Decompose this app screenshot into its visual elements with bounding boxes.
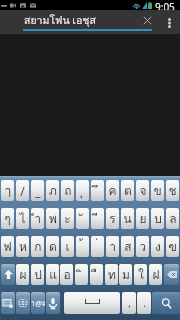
button[interactable]: Change language [16, 292, 30, 314]
button[interactable]: ก [31, 236, 44, 257]
button[interactable]: Keyboard settings [1, 292, 15, 314]
button[interactable]: ื [90, 264, 103, 285]
button[interactable]: ฝ [149, 264, 162, 285]
button[interactable]: Space [64, 292, 120, 314]
staticText: า [109, 237, 116, 256]
button[interactable]: Shift [1, 264, 15, 285]
button[interactable]: ึ [91, 180, 104, 201]
staticText: ะ [64, 209, 71, 228]
staticText: ต [124, 181, 132, 200]
button[interactable]: ท [105, 264, 118, 285]
button[interactable]: อ [60, 264, 73, 285]
staticText: ผ [19, 265, 27, 284]
staticText: ใ [138, 265, 144, 284]
staticText: ล [169, 209, 177, 228]
staticText: 1@# [31, 298, 45, 308]
staticText: ฃ [168, 237, 177, 256]
button[interactable]: . [137, 292, 151, 314]
button[interactable]: ค [106, 180, 119, 201]
staticText: ก [34, 237, 42, 256]
button[interactable]: ฃ [166, 236, 179, 257]
staticText: ช [168, 181, 177, 200]
button[interactable]: ต [121, 180, 134, 201]
staticText: ด [49, 237, 57, 256]
staticText: ป [34, 265, 42, 284]
button[interactable]: Backspace [164, 264, 179, 285]
button[interactable]: ะ [61, 208, 74, 229]
button[interactable]: ิ [75, 264, 88, 285]
button[interactable]: ๅ [1, 180, 14, 201]
button[interactable]: เ [61, 236, 74, 257]
button[interactable]: ส [121, 236, 134, 257]
button[interactable]: ใ [134, 264, 147, 285]
staticText: บ [154, 209, 162, 228]
staticText: 9:05 [155, 0, 175, 10]
staticText: ค [108, 181, 117, 200]
button[interactable]: ช [166, 180, 179, 201]
button[interactable]: More options [159, 10, 180, 34]
button[interactable]: ล [166, 208, 179, 229]
button[interactable]: 1@# [31, 292, 45, 314]
button[interactable]: ไ [16, 208, 29, 229]
button[interactable]: ผ [16, 264, 29, 285]
button[interactable]: พ [46, 208, 59, 229]
button[interactable]: ภ [46, 180, 59, 201]
staticText: น [123, 209, 132, 228]
button[interactable]: Search [152, 292, 180, 314]
staticText: พ [49, 209, 57, 228]
button[interactable]: Clear query [135, 10, 159, 34]
button[interactable]: ย [136, 208, 149, 229]
staticText: ๅ [5, 181, 11, 200]
staticText: ฝ [152, 265, 160, 284]
staticText: , [128, 296, 131, 310]
staticText: ถ [64, 181, 72, 200]
button[interactable]: ม [119, 264, 132, 285]
staticText: ฟ [3, 237, 12, 256]
staticText: แ [49, 265, 57, 284]
button[interactable]: บ [151, 208, 164, 229]
staticText: ม [122, 265, 130, 284]
button[interactable]: Voice input [46, 292, 60, 314]
button[interactable]: า [106, 236, 119, 257]
button[interactable]: ด [46, 236, 59, 257]
button[interactable]: แ [46, 264, 59, 285]
staticText: ข [153, 181, 162, 200]
button[interactable]: _ [31, 180, 44, 201]
button[interactable]: ข [151, 180, 164, 201]
staticText: ๆ [4, 209, 11, 228]
button[interactable]: ั [76, 208, 89, 229]
button[interactable]: ป [31, 264, 44, 285]
button[interactable]: , [122, 292, 136, 314]
staticText: อ [63, 265, 71, 284]
button[interactable]: จ [136, 180, 149, 201]
button[interactable]: ห [16, 236, 29, 257]
button[interactable]: น [121, 208, 134, 229]
staticText: / [20, 183, 25, 199]
button[interactable]: ุ [76, 180, 89, 201]
button[interactable]: ่ [91, 236, 104, 257]
button[interactable]: ้ [76, 236, 89, 257]
staticText: ย [139, 209, 147, 228]
staticText: เ [65, 237, 70, 256]
staticText: ห [19, 237, 27, 256]
staticText: สยามโฟน เอชุส [24, 12, 96, 29]
staticText: ส [124, 237, 132, 256]
staticText: จ [139, 181, 147, 200]
staticText: ำ [34, 209, 41, 228]
button[interactable]: ถ [61, 180, 74, 201]
button[interactable]: ร [106, 208, 119, 229]
staticText: ร [109, 209, 116, 228]
staticText: ว [139, 237, 146, 256]
button[interactable]: ๆ [1, 208, 14, 229]
staticText: . [143, 296, 146, 310]
button[interactable]: ี [91, 208, 104, 229]
staticText: ไ [19, 209, 26, 228]
staticText: _ [35, 183, 41, 199]
button[interactable]: ว [136, 236, 149, 257]
button[interactable]: ฟ [1, 236, 14, 257]
staticText: ท [108, 265, 116, 284]
button[interactable]: / [16, 180, 29, 201]
staticText: ภ [49, 181, 57, 200]
button[interactable]: ำ [31, 208, 44, 229]
button[interactable]: ง [151, 236, 164, 257]
